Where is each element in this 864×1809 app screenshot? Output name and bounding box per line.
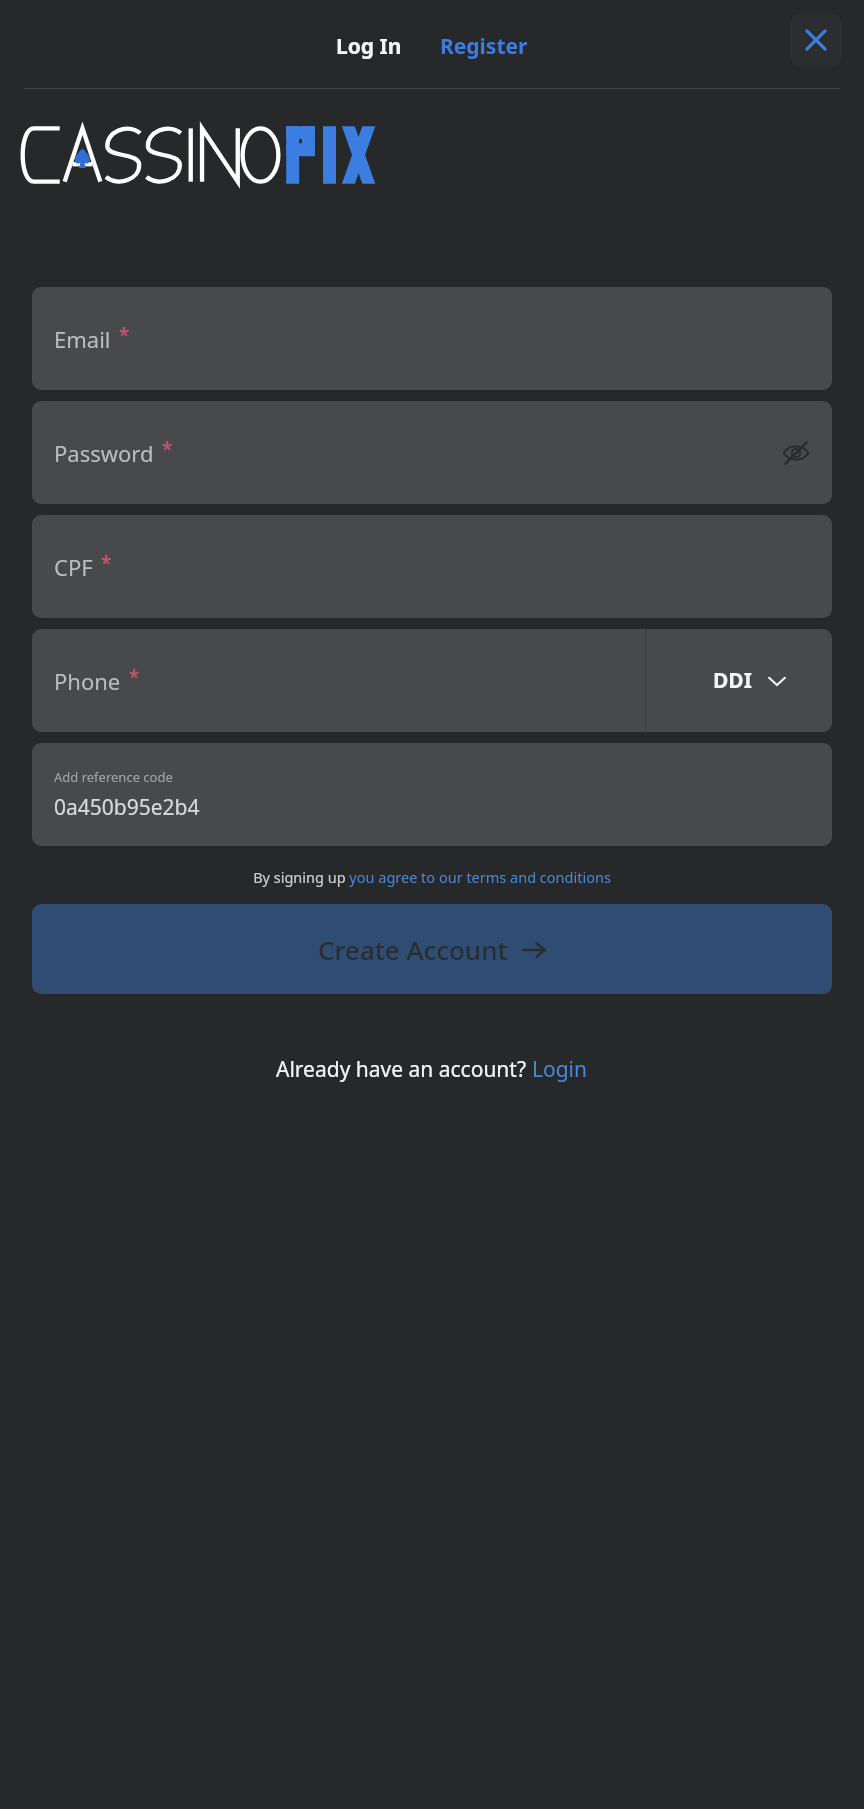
- button[interactable]: Close: [790, 14, 842, 66]
- button[interactable]: Already have an account?: [268, 1051, 596, 1088]
- staticText: *: [101, 550, 112, 576]
- staticText: Create Account: [318, 932, 508, 967]
- staticText: Log In: [336, 32, 402, 61]
- staticText: Register: [440, 32, 528, 61]
- staticText: Already have an account?: [276, 1055, 532, 1084]
- staticText: *: [162, 436, 173, 462]
- button[interactable]: Toggle password visibility: [774, 431, 818, 475]
- staticText: DDI: [713, 666, 752, 695]
- button[interactable]: Add reference code: [32, 743, 832, 846]
- button[interactable]: Create Account: [32, 904, 832, 994]
- button[interactable]: CPF: [32, 515, 832, 618]
- staticText: By signing up you agree to our terms and…: [253, 867, 611, 887]
- button[interactable]: Log In: [330, 28, 408, 65]
- staticText: 0a450b95e2b4: [54, 793, 200, 822]
- button[interactable]: Password: [32, 401, 832, 504]
- staticText: *: [129, 664, 140, 690]
- staticText: Email: [54, 324, 111, 354]
- button[interactable]: Register: [434, 28, 534, 65]
- staticText: Phone: [54, 666, 121, 696]
- button[interactable]: Phone: [32, 629, 832, 732]
- staticText: Login: [532, 1055, 588, 1084]
- staticText: Add reference code: [54, 768, 173, 786]
- staticText: CPF: [54, 552, 93, 582]
- button[interactable]: Email: [32, 287, 832, 390]
- staticText: Password: [54, 438, 154, 468]
- staticText: *: [119, 322, 130, 348]
